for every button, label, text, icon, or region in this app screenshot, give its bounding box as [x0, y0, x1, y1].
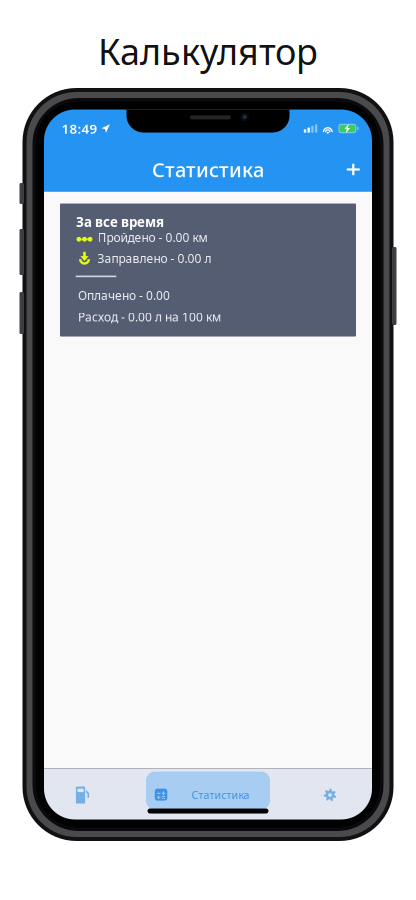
- staticText: Оплачено - 0.00: [78, 287, 170, 303]
- staticText: За все время: [76, 213, 164, 231]
- staticText: Пройдено - 0.00 км: [97, 229, 207, 245]
- staticText: 18:49: [61, 120, 97, 137]
- button[interactable]: Add: [331, 147, 375, 191]
- button[interactable]: Fuel: [54, 776, 110, 814]
- staticText: Статистика: [152, 156, 264, 183]
- staticText: Заправлено - 0.00 л: [97, 250, 211, 266]
- staticText: Калькулятор: [98, 27, 318, 75]
- staticText: Статистика: [191, 788, 249, 802]
- button[interactable]: Settings: [302, 776, 358, 814]
- staticText: Расход - 0.00 л на 100 км: [78, 309, 221, 325]
- button[interactable]: Статистика: [146, 771, 270, 809]
